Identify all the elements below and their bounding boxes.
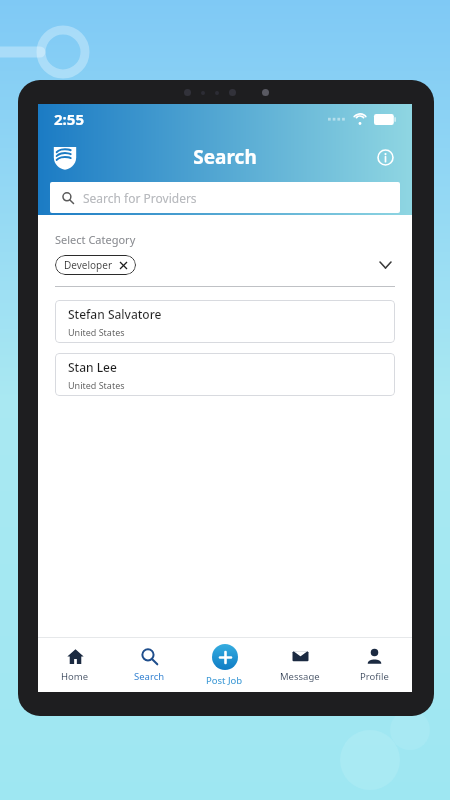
staticText: Message	[280, 670, 320, 683]
button[interactable]: Stan Lee	[55, 353, 395, 396]
staticText: Stan Lee	[68, 359, 117, 375]
button[interactable]: Expand category	[375, 255, 395, 275]
button[interactable]: Developer	[55, 255, 136, 275]
staticText: Search for Providers	[83, 190, 197, 206]
staticText: Stefan Salvatore	[68, 306, 162, 322]
button[interactable]: Home	[38, 638, 112, 692]
button[interactable]: Search	[112, 638, 187, 692]
button[interactable]: App logo	[52, 144, 78, 170]
button[interactable]: Profile	[337, 638, 412, 692]
staticText: Post Job	[206, 674, 243, 687]
staticText: Search	[134, 670, 165, 683]
staticText: United States	[68, 379, 125, 391]
button[interactable]: Stefan Salvatore	[55, 300, 395, 343]
staticText: Search	[78, 144, 372, 170]
staticText: United States	[68, 326, 125, 338]
staticText: Developer	[64, 258, 113, 272]
button[interactable]: Information	[372, 144, 398, 170]
button[interactable]: Message	[262, 638, 337, 692]
button[interactable]: Post Job	[187, 638, 262, 692]
staticText: Home	[61, 670, 89, 683]
button[interactable]: Search for Providers	[50, 182, 400, 213]
staticText: Profile	[360, 670, 389, 683]
staticText: Select Category	[55, 232, 136, 247]
staticText: 2:55	[54, 109, 84, 129]
